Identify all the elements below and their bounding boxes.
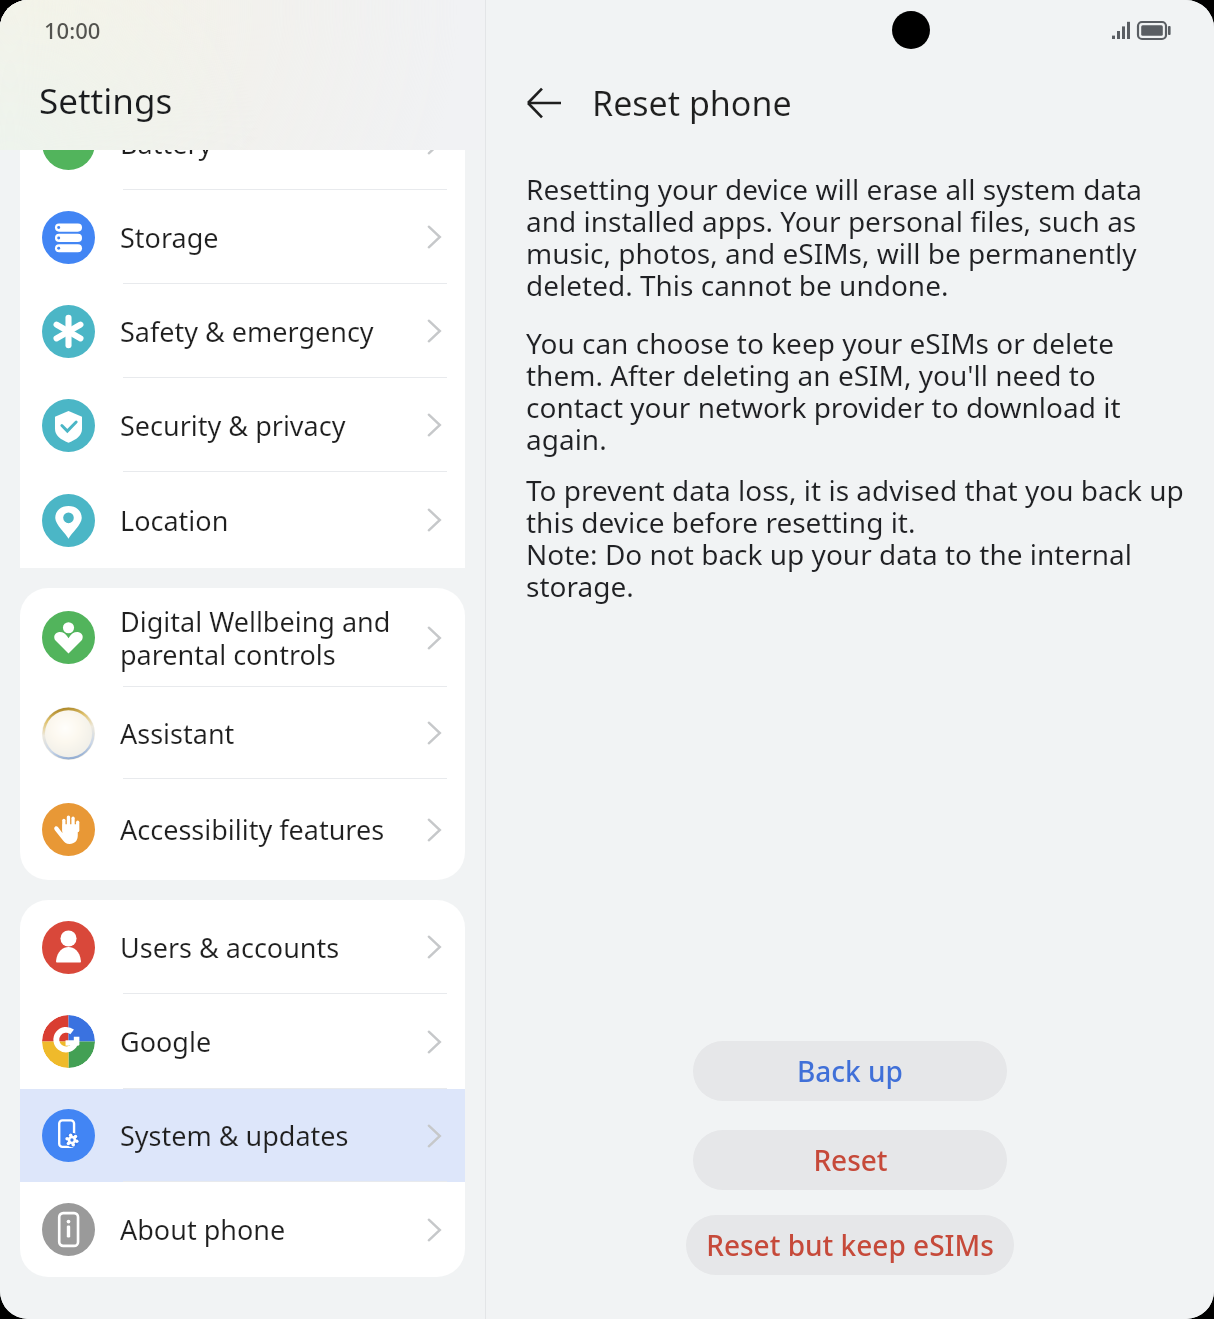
- staticText: Reset but keep eSIMs: [706, 1226, 994, 1264]
- button[interactable]: Back: [520, 79, 568, 127]
- button[interactable]: Safety & emergency: [20, 284, 465, 378]
- staticText: Security & privacy: [120, 407, 421, 444]
- button[interactable]: Digital Wellbeing and parental controls: [20, 588, 465, 687]
- button[interactable]: Reset: [693, 1130, 1007, 1190]
- staticText: Assistant: [120, 715, 421, 752]
- staticText: Resetting your device will erase all sys…: [526, 170, 1188, 304]
- button[interactable]: Storage: [20, 190, 465, 284]
- staticText: Users & accounts: [120, 929, 421, 966]
- staticText: Accessibility features: [120, 811, 421, 848]
- button[interactable]: Security & privacy: [20, 378, 465, 472]
- button[interactable]: Google: [20, 994, 465, 1089]
- staticText: Settings: [39, 77, 173, 125]
- button[interactable]: Accessibility features: [20, 779, 465, 880]
- staticText: You can choose to keep your eSIMs or del…: [526, 324, 1188, 458]
- staticText: Battery: [120, 125, 421, 162]
- staticText: Safety & emergency: [120, 313, 421, 350]
- staticText: Back up: [797, 1052, 903, 1090]
- button[interactable]: Assistant: [20, 687, 465, 779]
- staticText: Google: [120, 1023, 421, 1060]
- staticText: Digital Wellbeing and parental controls: [120, 603, 421, 673]
- button[interactable]: About phone: [20, 1182, 465, 1277]
- button[interactable]: Users & accounts: [20, 900, 465, 994]
- staticText: Reset: [813, 1141, 888, 1179]
- staticText: Location: [120, 502, 421, 539]
- staticText: To prevent data loss, it is advised that…: [526, 471, 1188, 605]
- button[interactable]: System & updates: [20, 1089, 465, 1182]
- button[interactable]: Battery: [20, 96, 465, 190]
- staticText: Reset phone: [592, 80, 792, 126]
- button[interactable]: Location: [20, 472, 465, 568]
- button[interactable]: Reset but keep eSIMs: [686, 1215, 1014, 1275]
- staticText: System & updates: [120, 1117, 421, 1154]
- button[interactable]: Back up: [693, 1041, 1007, 1101]
- staticText: About phone: [120, 1211, 421, 1248]
- staticText: Storage: [120, 219, 421, 256]
- staticText: 10:00: [44, 15, 101, 45]
